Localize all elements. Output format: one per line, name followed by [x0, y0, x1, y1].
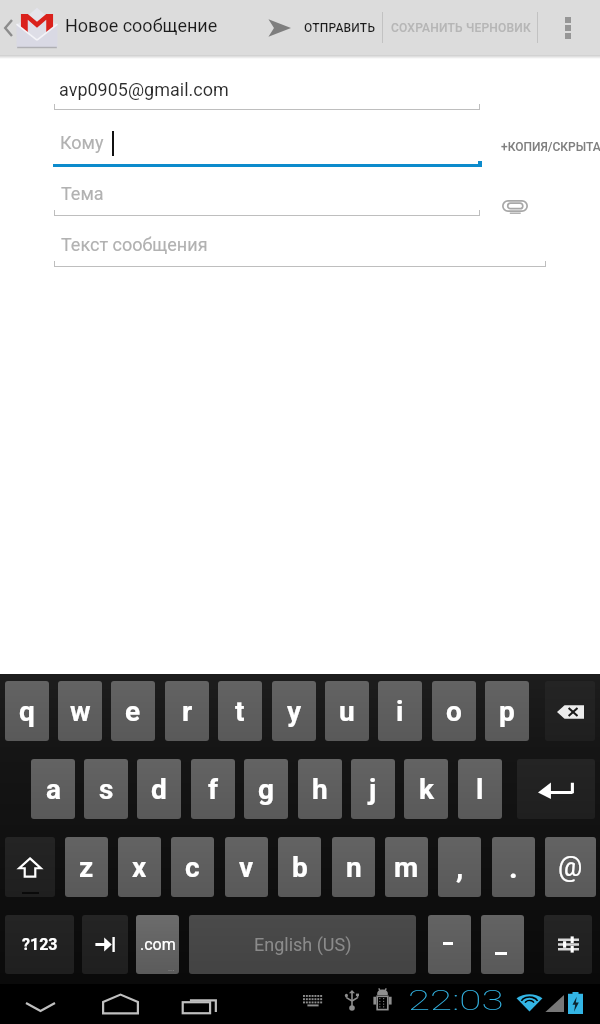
- button[interactable]: q: [5, 681, 49, 741]
- staticText: k: [419, 773, 434, 806]
- staticText: a: [46, 773, 61, 806]
- button[interactable]: m: [385, 837, 428, 897]
- staticText: English (US): [254, 934, 352, 955]
- staticText: ?123: [22, 935, 58, 954]
- staticText: Текст сообщения: [61, 234, 208, 255]
- button[interactable]: v: [225, 837, 268, 897]
- staticText: x: [132, 851, 147, 884]
- button[interactable]: j: [351, 759, 395, 819]
- staticText: Тема: [61, 183, 104, 204]
- button[interactable]: Underscore: [481, 915, 524, 974]
- staticText: h: [312, 773, 328, 806]
- button[interactable]: ?123: [5, 915, 74, 974]
- button[interactable]: Input settings: [544, 915, 592, 974]
- button[interactable]: ,: [438, 837, 481, 897]
- staticText: w: [70, 695, 91, 728]
- staticText: g: [258, 773, 274, 806]
- staticText: t: [235, 695, 245, 728]
- staticText: .: [509, 850, 518, 885]
- button[interactable]: e: [111, 681, 155, 741]
- button[interactable]: Backspace: [545, 681, 595, 741]
- staticText: d: [151, 773, 167, 806]
- staticText: Кому: [60, 132, 104, 153]
- button[interactable]: g: [244, 759, 288, 819]
- button[interactable]: h: [298, 759, 342, 819]
- staticText: l: [476, 773, 484, 806]
- staticText: u: [339, 695, 355, 728]
- staticText: v: [239, 851, 254, 884]
- staticText: m: [394, 851, 419, 884]
- staticText: avp0905@gmail.com: [59, 79, 229, 100]
- button[interactable]: Shift: [5, 837, 55, 897]
- staticText: ...: [168, 964, 175, 973]
- button[interactable]: o: [432, 681, 476, 741]
- button[interactable]: f: [191, 759, 235, 819]
- button[interactable]: n: [332, 837, 375, 897]
- staticText: z: [79, 851, 94, 884]
- button[interactable]: u: [325, 681, 369, 741]
- button[interactable]: z: [65, 837, 108, 897]
- button[interactable]: s: [84, 759, 128, 819]
- button[interactable]: Navigate up: [0, 0, 16, 55]
- button[interactable]: Recent apps: [170, 984, 224, 1024]
- button[interactable]: СОХРАНИТЬ ЧЕРНОВИК: [383, 0, 539, 55]
- staticText: s: [99, 773, 114, 806]
- button[interactable]: d: [137, 759, 181, 819]
- button[interactable]: Enter: [517, 759, 595, 819]
- button[interactable]: x: [118, 837, 161, 897]
- staticText: .com: [140, 935, 176, 954]
- button[interactable]: a: [31, 759, 75, 819]
- button[interactable]: Tab: [82, 915, 128, 974]
- button[interactable]: b: [278, 837, 321, 897]
- staticText: ,: [456, 850, 464, 885]
- staticText: ОТПРАВИТЬ: [304, 21, 376, 35]
- staticText: c: [185, 851, 200, 884]
- button[interactable]: @: [545, 837, 596, 897]
- staticText: +КОПИЯ/СКРЫТАЯ: [501, 140, 600, 154]
- button[interactable]: t: [218, 681, 262, 741]
- staticText: p: [499, 695, 515, 728]
- button[interactable]: Home: [94, 984, 148, 1024]
- button[interactable]: y: [272, 681, 316, 741]
- button[interactable]: .: [492, 837, 535, 897]
- staticText: b: [292, 851, 308, 884]
- button[interactable]: Hyphen: [428, 915, 471, 974]
- button[interactable]: k: [404, 759, 448, 819]
- staticText: y: [287, 695, 302, 728]
- staticText: r: [182, 695, 193, 728]
- button[interactable]: l: [458, 759, 502, 819]
- button[interactable]: r: [165, 681, 209, 741]
- button[interactable]: Attach file: [495, 188, 535, 224]
- staticText: o: [446, 695, 462, 728]
- staticText: q: [19, 695, 35, 728]
- staticText: n: [346, 851, 362, 884]
- button[interactable]: Space: [189, 915, 416, 974]
- button[interactable]: p: [485, 681, 529, 741]
- staticText: i: [396, 695, 404, 728]
- staticText: j: [369, 773, 377, 806]
- button[interactable]: ОТПРАВИТЬ: [268, 0, 376, 55]
- button[interactable]: w: [58, 681, 102, 741]
- staticText: 22:03: [408, 984, 504, 1017]
- staticText: e: [125, 695, 141, 728]
- staticText: f: [208, 773, 219, 806]
- button[interactable]: .com: [136, 915, 179, 974]
- staticText: Новое сообщение: [65, 15, 218, 36]
- button[interactable]: Back: [14, 984, 68, 1024]
- button[interactable]: More options: [546, 0, 590, 55]
- staticText: @: [558, 851, 583, 883]
- button[interactable]: i: [378, 681, 422, 741]
- button[interactable]: c: [171, 837, 214, 897]
- staticText: СОХРАНИТЬ ЧЕРНОВИК: [391, 21, 531, 35]
